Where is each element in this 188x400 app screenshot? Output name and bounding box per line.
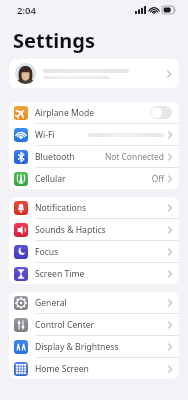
staticText: Focus xyxy=(35,246,168,258)
button[interactable]: Airplane Mode toggle, off xyxy=(150,106,172,119)
staticText: Airplane Mode xyxy=(35,107,150,119)
button[interactable]: Cellular xyxy=(9,168,179,189)
staticText: 2:04 xyxy=(17,4,36,17)
button[interactable]: Screen Time xyxy=(9,263,179,284)
button[interactable]: Control Center xyxy=(9,314,179,335)
button[interactable]: Display & Brightness xyxy=(9,336,179,357)
button[interactable]: General xyxy=(9,292,179,313)
staticText: Off xyxy=(151,173,164,184)
button[interactable]: Bluetooth xyxy=(9,146,179,167)
staticText: Cellular xyxy=(35,173,151,185)
staticText: Settings xyxy=(13,27,95,54)
staticText: Sounds & Haptics xyxy=(35,224,168,236)
staticText: Notifications xyxy=(35,202,168,214)
button[interactable]: Airplane Mode xyxy=(9,102,179,123)
staticText: Screen Time xyxy=(35,268,168,280)
button[interactable]: Home Screen xyxy=(9,358,179,379)
staticText: Display & Brightness xyxy=(35,341,168,353)
staticText: Wi-Fi xyxy=(35,129,88,141)
staticText: General xyxy=(35,297,168,309)
staticText: Control Center xyxy=(35,319,168,331)
button[interactable] xyxy=(9,59,179,88)
staticText: Home Screen xyxy=(35,363,168,375)
button[interactable]: Focus xyxy=(9,241,179,262)
button[interactable]: Notifications xyxy=(9,197,179,218)
button[interactable]: Wi-Fi xyxy=(9,124,179,145)
staticText: Not Connected xyxy=(104,151,164,162)
staticText: Bluetooth xyxy=(35,151,104,163)
button[interactable]: Sounds & Haptics xyxy=(9,219,179,240)
